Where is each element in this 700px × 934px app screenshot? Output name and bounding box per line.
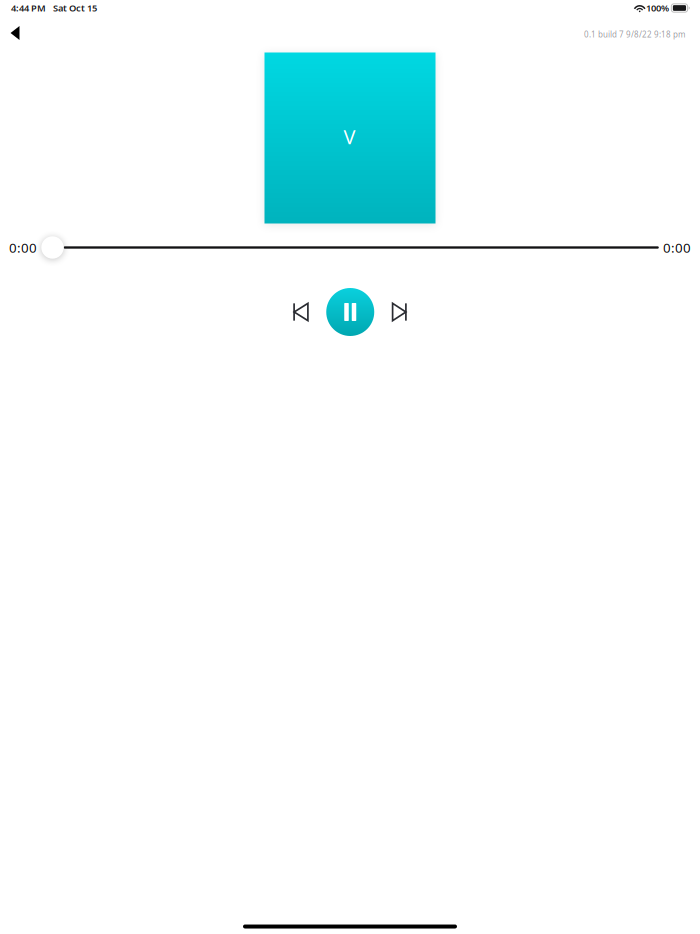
staticText: 100%	[646, 2, 669, 14]
button[interactable]: Previous track	[279, 288, 309, 336]
button[interactable]: Back	[0, 18, 32, 48]
button[interactable]: Playback position	[41, 236, 659, 259]
staticText: 0:00	[9, 239, 37, 256]
staticText: Sat Oct 15	[53, 2, 97, 14]
button[interactable]: Next track	[392, 288, 421, 336]
button[interactable]: Pause	[326, 288, 374, 336]
staticText: 0:00	[663, 239, 691, 256]
staticText: 4:44 PM	[11, 2, 46, 14]
staticText: V	[343, 123, 355, 150]
staticText: 0.1 build 7 9/8/22 9:18 pm	[584, 29, 685, 40]
